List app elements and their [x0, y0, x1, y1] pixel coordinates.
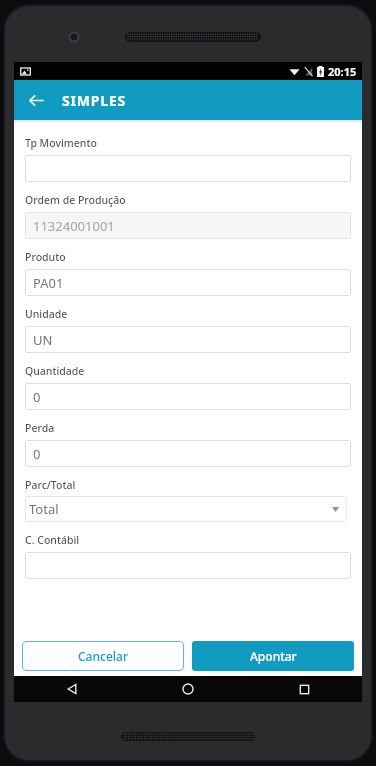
staticText: SIMPLES [62, 91, 127, 110]
staticText: Cancelar [78, 648, 128, 664]
staticText: Perda [25, 421, 55, 435]
button[interactable]: Apontar [192, 641, 354, 671]
staticText: PA01 [33, 274, 64, 292]
staticText: Total [29, 500, 59, 518]
staticText: Ordem de Produção [25, 193, 126, 207]
staticText: Parc/Total [25, 478, 76, 492]
button[interactable]: Home [130, 676, 246, 702]
button[interactable] [25, 155, 351, 182]
button[interactable]: PA01 [25, 269, 351, 296]
staticText: Quantidade [25, 364, 85, 378]
button[interactable] [25, 552, 351, 579]
staticText: 20:15 [328, 64, 357, 79]
button[interactable]: Cancelar [22, 641, 184, 671]
staticText: Produto [25, 250, 66, 264]
button[interactable]: 0 [25, 440, 351, 467]
button[interactable]: Total [25, 496, 347, 522]
staticText: Tp Movimento [25, 136, 97, 150]
button[interactable]: UN [25, 326, 351, 353]
staticText: 0 [33, 445, 41, 463]
staticText: Unidade [25, 307, 68, 321]
button[interactable]: Back [14, 676, 130, 702]
staticText: UN [33, 331, 53, 349]
staticText: Apontar [250, 648, 297, 664]
button[interactable]: Back [19, 83, 53, 117]
staticText: C. Contábil [25, 533, 80, 547]
staticText: 0 [33, 388, 41, 406]
staticText: 11324001001 [33, 217, 115, 235]
button[interactable]: 11324001001 [25, 212, 351, 239]
button[interactable]: Recent apps [246, 676, 362, 702]
button[interactable]: 0 [25, 383, 351, 410]
